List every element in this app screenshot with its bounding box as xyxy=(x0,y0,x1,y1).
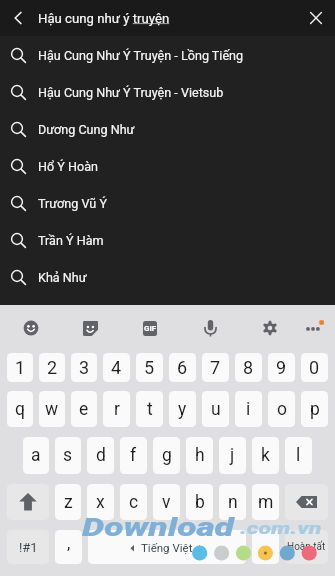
button[interactable]: h xyxy=(186,437,213,474)
staticText: !#1 xyxy=(19,540,38,555)
staticText: . xyxy=(263,534,268,554)
staticText: 7 xyxy=(210,357,221,378)
button[interactable]: Dương Cung Như xyxy=(0,111,335,148)
staticText: 3 xyxy=(79,357,90,378)
staticText: .com.vn xyxy=(240,518,322,538)
staticText: u xyxy=(211,399,221,420)
button[interactable]: 7 xyxy=(202,353,229,382)
staticText: 8 xyxy=(243,357,254,378)
button[interactable]: q xyxy=(7,391,33,427)
staticText: e xyxy=(79,399,89,420)
staticText: n xyxy=(228,492,238,513)
button[interactable]: Hoàn tất xyxy=(285,530,328,564)
button[interactable]: f xyxy=(120,437,147,474)
staticText: h xyxy=(195,445,205,466)
button[interactable]: u xyxy=(202,391,229,427)
staticText: 9 xyxy=(276,357,287,378)
staticText: 2 xyxy=(47,357,58,378)
button[interactable]: a xyxy=(23,437,49,474)
staticText: k xyxy=(261,445,270,466)
button[interactable]: g xyxy=(153,437,180,474)
button[interactable]: t xyxy=(136,391,163,427)
button[interactable]: Voice input xyxy=(195,313,225,343)
button[interactable]: n xyxy=(219,484,246,520)
button[interactable]: 3 xyxy=(71,353,97,382)
button[interactable]: 5 xyxy=(136,353,163,382)
button[interactable]: b xyxy=(186,484,213,520)
staticText: Hoàn tất xyxy=(287,541,326,553)
staticText: Dương Cung Như xyxy=(38,122,135,137)
button[interactable]: o xyxy=(268,391,295,427)
button[interactable]: . xyxy=(252,530,279,564)
button[interactable]: More options xyxy=(299,313,329,343)
staticText: i xyxy=(246,399,251,420)
button[interactable]: Emoji xyxy=(16,313,46,343)
button[interactable]: Stickers xyxy=(75,313,105,343)
staticText: a xyxy=(31,445,41,466)
button[interactable]: j xyxy=(219,437,246,474)
button[interactable]: r xyxy=(103,391,130,427)
staticText: s xyxy=(63,445,73,466)
button[interactable]: m xyxy=(252,484,279,520)
button[interactable]: y xyxy=(169,391,196,427)
button[interactable]: GIF xyxy=(135,313,165,343)
button[interactable]: p xyxy=(301,391,328,427)
button[interactable]: 9 xyxy=(268,353,295,382)
button[interactable]: k xyxy=(252,437,279,474)
button[interactable]: Trương Vũ Ý xyxy=(0,185,335,222)
button[interactable]: z xyxy=(55,484,81,520)
button[interactable]: e xyxy=(71,391,97,427)
staticText: f xyxy=(130,445,137,466)
button[interactable]: w xyxy=(39,391,65,427)
button[interactable]: , xyxy=(55,530,82,564)
button[interactable]: 1 xyxy=(7,353,33,382)
button[interactable]: Backspace xyxy=(285,484,328,520)
staticText: Trần Ý Hàm xyxy=(38,233,104,248)
staticText: g xyxy=(162,445,172,466)
staticText: , xyxy=(67,533,71,553)
button[interactable]: Clear search xyxy=(304,6,328,30)
staticText: Hậu Cung Như Ý Truyện - Vietsub xyxy=(38,85,224,100)
staticText: p xyxy=(310,399,320,420)
button[interactable]: 8 xyxy=(235,353,262,382)
button[interactable]: s xyxy=(55,437,81,474)
staticText: 4 xyxy=(111,357,122,378)
button[interactable]: Settings xyxy=(255,313,285,343)
staticText: GIF xyxy=(144,324,157,333)
button[interactable]: 2 xyxy=(39,353,65,382)
staticText: d xyxy=(96,445,106,466)
button[interactable]: Space, Tiếng Việt xyxy=(88,530,246,564)
button[interactable]: !#1 xyxy=(7,530,49,564)
staticText: w xyxy=(45,399,59,420)
button[interactable]: Hậu Cung Như Ý Truyện - Lồng Tiếng xyxy=(0,37,335,74)
button[interactable]: i xyxy=(235,391,262,427)
button[interactable]: 6 xyxy=(169,353,196,382)
button[interactable]: 4 xyxy=(103,353,130,382)
staticText: o xyxy=(277,399,287,420)
staticText: Hổ Ý Hoàn xyxy=(38,159,98,174)
button[interactable]: x xyxy=(87,484,114,520)
staticText: 1 xyxy=(15,357,26,378)
staticText: z xyxy=(64,492,73,513)
staticText: b xyxy=(195,492,205,513)
button[interactable]: Khả Như xyxy=(0,259,335,296)
button[interactable]: Shift xyxy=(7,484,49,520)
button[interactable]: l xyxy=(285,437,312,474)
button[interactable]: 0 xyxy=(301,353,328,382)
button[interactable]: v xyxy=(153,484,180,520)
staticText: Khả Như xyxy=(38,270,87,285)
button[interactable]: Trần Ý Hàm xyxy=(0,222,335,259)
staticText: 5 xyxy=(144,357,155,378)
staticText: y xyxy=(178,399,187,420)
staticText: m xyxy=(258,492,274,513)
button[interactable]: c xyxy=(120,484,147,520)
staticText: Tiếng Việt xyxy=(141,541,193,554)
staticText: Hậu cung như ý truyện xyxy=(38,11,170,26)
staticText: l xyxy=(296,445,301,466)
staticText: x xyxy=(96,492,105,513)
button[interactable]: d xyxy=(87,437,114,474)
staticText: c xyxy=(129,492,139,513)
button[interactable]: Hậu Cung Như Ý Truyện - Vietsub xyxy=(0,74,335,111)
button[interactable]: Hổ Ý Hoàn xyxy=(0,148,335,185)
button[interactable]: Back xyxy=(6,6,30,30)
